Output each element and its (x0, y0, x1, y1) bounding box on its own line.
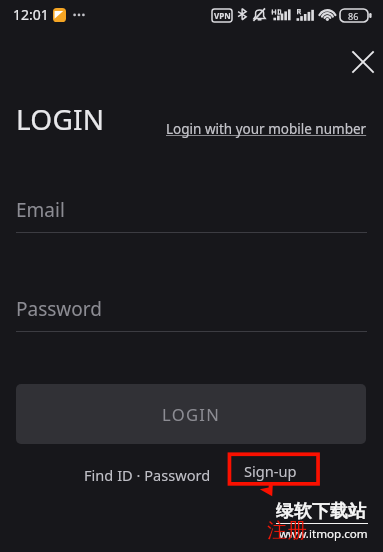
staticText: www.itmop.com (279, 526, 368, 542)
button[interactable]: LOGIN (16, 384, 366, 444)
staticText: VPN (214, 10, 231, 21)
staticText: 注册 (267, 518, 307, 543)
staticText: 86 (348, 10, 359, 22)
staticText: Sign-up (244, 461, 297, 481)
staticText: LOGIN (162, 403, 221, 426)
button[interactable]: Login with your mobile number (162, 116, 371, 142)
button[interactable]: Find ID · Password (75, 457, 220, 493)
staticText: 绿软下载站 (276, 500, 366, 522)
staticText: 12:01 (13, 5, 49, 24)
staticText: Password (16, 296, 102, 322)
staticText: Email (16, 197, 65, 223)
staticText: LOGIN (16, 100, 105, 138)
staticText: Find ID · Password (84, 465, 211, 485)
button[interactable]: Sign-up (228, 455, 313, 487)
staticText: Login with your mobile number (166, 120, 367, 138)
button[interactable]: Close (343, 42, 383, 82)
